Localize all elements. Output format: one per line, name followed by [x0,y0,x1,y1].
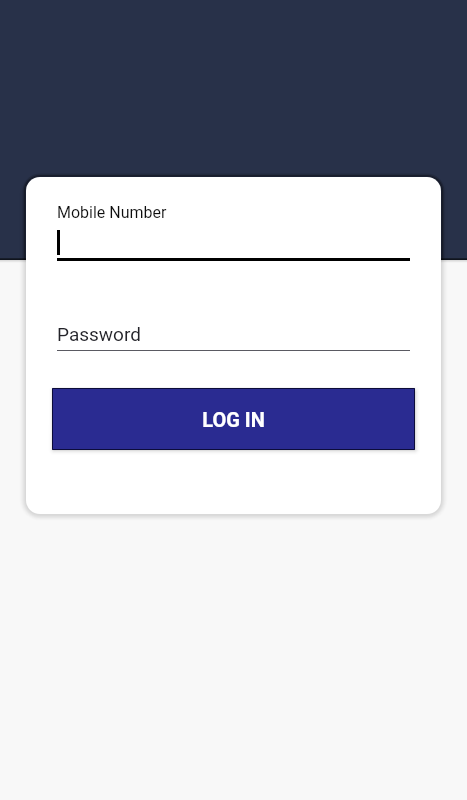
staticText: LOG IN [202,408,265,431]
staticText: Password [57,323,141,345]
staticText: Mobile Number [57,203,167,222]
button[interactable]: LOG IN [52,388,415,450]
button[interactable]: Password text field [57,317,410,351]
button[interactable]: Mobile Number text field [57,197,410,261]
